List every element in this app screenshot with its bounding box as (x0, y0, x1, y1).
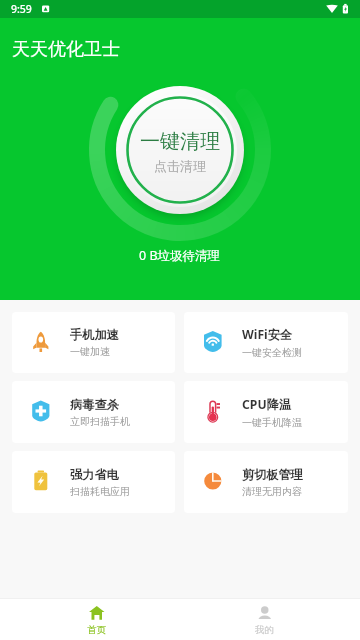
button[interactable]: 强力省电 (12, 451, 175, 513)
staticText: 天天优化卫士 (12, 38, 120, 61)
staticText: 首页 (87, 624, 106, 636)
staticText: 我的 (255, 624, 274, 636)
button[interactable]: CPU降温 (184, 381, 348, 443)
staticText: 9:59 (11, 2, 32, 16)
staticText: 点击清理 (154, 158, 206, 174)
staticText: 一键清理 (140, 129, 220, 154)
button[interactable]: WiFi安全 (184, 312, 348, 373)
button[interactable]: 手机加速 (12, 312, 175, 373)
staticText: 立即扫描手机 (70, 415, 130, 428)
button[interactable]: 剪切板管理 (184, 451, 348, 513)
staticText: 剪切板管理 (242, 467, 303, 482)
staticText: 一键安全检测 (242, 346, 302, 359)
staticText: 强力省电 (70, 467, 119, 482)
staticText: 清理无用内容 (242, 485, 302, 498)
button[interactable]: 病毒查杀 (12, 381, 175, 443)
staticText: CPU降温 (242, 396, 291, 413)
staticText: 0 B垃圾待清理 (139, 247, 221, 264)
button[interactable]: 首页 (12, 598, 180, 640)
button[interactable]: 我的 (180, 598, 348, 640)
staticText: 一键手机降温 (242, 416, 302, 429)
staticText: 一键加速 (70, 345, 110, 358)
staticText: WiFi安全 (242, 326, 293, 343)
button[interactable]: 一键清理 (116, 86, 244, 214)
staticText: 扫描耗电应用 (70, 485, 130, 498)
staticText: 病毒查杀 (70, 397, 119, 412)
staticText: 手机加速 (70, 327, 119, 342)
